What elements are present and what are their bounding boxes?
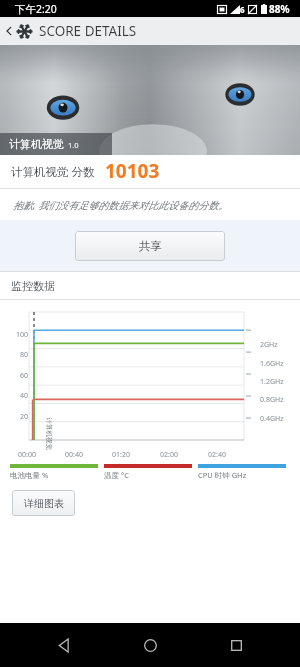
staticText: 抱歉, 我们没有足够的数据来对比此设备的分数。 bbox=[13, 198, 229, 212]
staticText: 40 bbox=[6, 391, 28, 401]
staticText: 100 bbox=[6, 330, 28, 340]
staticText: 0.8GHz bbox=[260, 395, 296, 405]
staticText: 电池电量 % bbox=[10, 470, 49, 480]
staticText: 2GHz bbox=[260, 340, 296, 350]
button[interactable]: Back bbox=[42, 623, 86, 667]
staticText: 20 bbox=[6, 412, 28, 422]
staticText: 下午2:20 bbox=[15, 2, 57, 16]
button[interactable]: Back bbox=[0, 17, 300, 45]
staticText: 详细图表 bbox=[24, 497, 64, 510]
staticText: 00:40 bbox=[65, 450, 83, 460]
staticText: SCORE DETAILS bbox=[39, 22, 137, 40]
staticText: 监控数据 bbox=[11, 279, 55, 293]
staticText: 1.2GHz bbox=[260, 377, 296, 387]
staticText: 0.4GHz bbox=[260, 414, 296, 424]
staticText: 计算机视觉 bbox=[44, 417, 52, 450]
staticText: 88% bbox=[269, 2, 290, 16]
staticText: 温度 °C bbox=[104, 470, 129, 480]
staticText: 02:40 bbox=[208, 450, 226, 460]
staticText: 共享 bbox=[139, 239, 162, 253]
button[interactable]: Recents bbox=[214, 623, 258, 667]
other: Back bbox=[4, 24, 14, 38]
staticText: 02:00 bbox=[160, 450, 178, 460]
staticText: 1.0 bbox=[68, 140, 79, 150]
staticText: 1.6GHz bbox=[260, 359, 296, 369]
staticText: CPU 时钟 GHz bbox=[198, 470, 247, 480]
staticText: 计算机视觉 bbox=[9, 137, 64, 151]
staticText: 60 bbox=[6, 371, 28, 381]
staticText: 01:20 bbox=[112, 450, 130, 460]
button[interactable]: 详细图表 bbox=[12, 490, 75, 516]
staticText: 10103 bbox=[105, 158, 160, 184]
staticText: 6 bbox=[240, 4, 245, 15]
staticText: 计算机视觉 分数 bbox=[11, 164, 95, 180]
staticText: 00:00 bbox=[18, 450, 36, 460]
button[interactable]: 共享 bbox=[75, 231, 225, 261]
staticText: 80 bbox=[6, 350, 28, 360]
button[interactable]: Home bbox=[128, 623, 172, 667]
